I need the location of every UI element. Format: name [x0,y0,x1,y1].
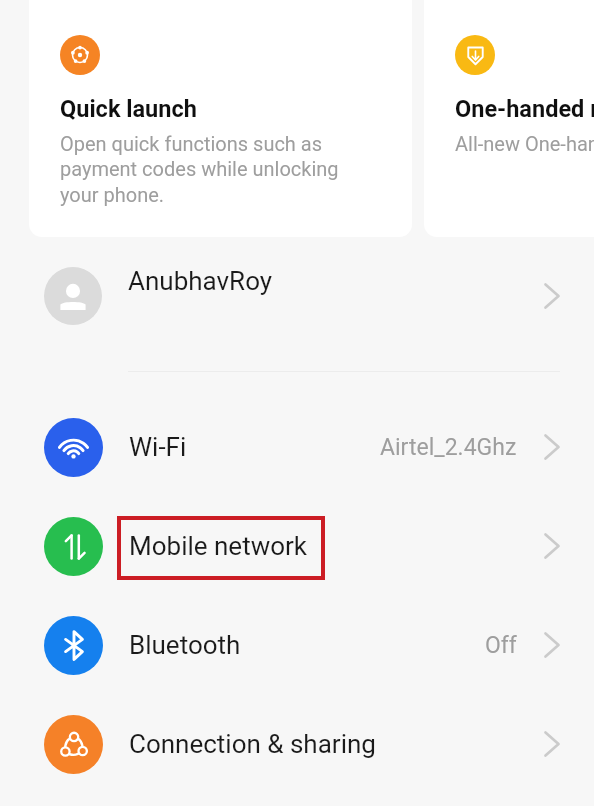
staticText: Wi-Fi [129,432,187,462]
button[interactable]: Quick launch [29,0,412,237]
staticText: One-handed mode [455,95,594,123]
staticText: Connection & sharing [129,729,376,759]
staticText: Bluetooth [129,630,241,660]
other: Wi-Fi [44,418,103,477]
staticText: Off [485,632,517,659]
staticText: Quick launch [60,95,197,123]
staticText: Mobile network [129,531,308,561]
button[interactable]: Wi-Fi [0,398,594,496]
button[interactable]: One-handed mode [424,0,594,237]
other: Connection and sharing [44,715,103,774]
button[interactable]: Mobile network [0,497,594,595]
other: Mobile network [44,517,103,576]
staticText: Airtel_2.4Ghz [380,434,517,461]
other: Bluetooth [44,616,103,675]
staticText: AnubhavRoy [128,266,273,296]
button[interactable]: Connection and sharing [0,695,594,793]
staticText: Open quick functions such as payment cod… [60,132,339,207]
staticText: All-new One-handed mode with new gesture… [455,132,594,155]
button[interactable]: AnubhavRoy [0,247,594,345]
button[interactable]: Bluetooth [0,596,594,694]
